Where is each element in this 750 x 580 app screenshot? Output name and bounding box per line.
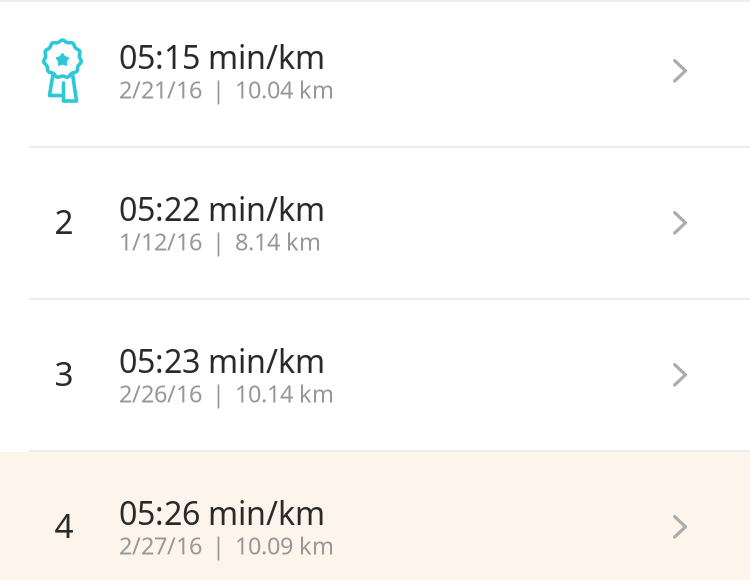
button[interactable]: 05:26 min/km, 2/27/16, 10.09 km: [0, 452, 750, 580]
button[interactable]: 05:15 min/km, 2/21/16, 10.04 km: [0, 2, 750, 146]
staticText: 2/26/16 | 10.14 km: [119, 377, 334, 409]
staticText: 1/12/16 | 8.14 km: [119, 225, 321, 257]
staticText: 05:23 min/km: [119, 339, 325, 382]
button[interactable]: 05:23 min/km, 2/26/16, 10.14 km: [0, 300, 750, 450]
staticText: 3: [54, 351, 73, 395]
staticText: 2: [54, 199, 73, 243]
staticText: 05:26 min/km: [119, 491, 325, 534]
staticText: 05:22 min/km: [119, 187, 325, 230]
button[interactable]: 05:22 min/km, 1/12/16, 8.14 km: [0, 148, 750, 298]
staticText: 05:15 min/km: [119, 35, 325, 78]
staticText: 2/21/16 | 10.04 km: [119, 73, 334, 105]
staticText: 4: [54, 503, 73, 547]
staticText: 2/27/16 | 10.09 km: [119, 529, 334, 561]
